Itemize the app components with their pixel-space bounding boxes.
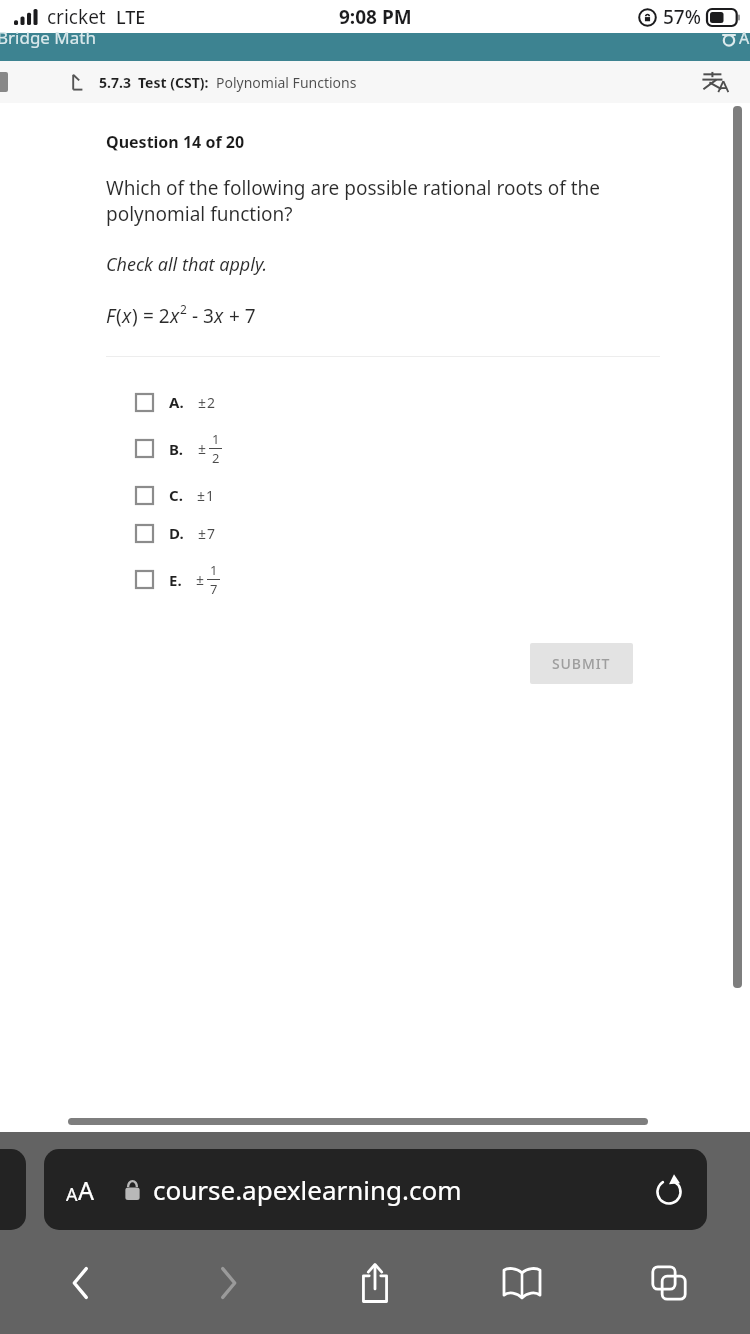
staticText: 7	[210, 580, 218, 598]
staticText: cricket	[47, 4, 106, 30]
staticText: - 3	[187, 303, 214, 329]
staticText: 57%	[663, 4, 701, 30]
staticText: D.	[169, 523, 184, 543]
staticText: (	[116, 303, 122, 329]
staticText: Question 14 of 20	[106, 131, 245, 153]
button[interactable]: SUBMIT	[530, 643, 633, 684]
staticText: 2	[207, 393, 216, 412]
button[interactable]: Share	[320, 1252, 430, 1314]
staticText: x	[214, 303, 224, 329]
staticText: x	[122, 303, 132, 329]
button[interactable]: E.	[0, 552, 750, 607]
staticText: 1	[210, 561, 218, 579]
button[interactable]: D.	[0, 514, 750, 552]
button[interactable]: Tabs	[614, 1252, 724, 1314]
staticText: 7	[207, 524, 216, 543]
staticText: Which of the following are possible rati…	[106, 175, 660, 227]
staticText: F	[106, 303, 116, 329]
staticText: A	[78, 1173, 94, 1207]
button[interactable]: Translate	[702, 70, 728, 94]
staticText: course.apexlearning.com	[153, 1172, 462, 1207]
button[interactable]: Forward	[173, 1252, 283, 1314]
staticText: 5.7.3	[99, 73, 131, 92]
staticText: E.	[169, 570, 182, 590]
button[interactable]: A	[44, 1149, 707, 1230]
staticText: A.	[169, 392, 184, 412]
staticText: SUBMIT	[552, 654, 611, 673]
staticText: ±	[196, 570, 205, 589]
staticText: ±	[198, 393, 207, 412]
staticText: )	[132, 303, 138, 329]
staticText: 9:08 PM	[339, 4, 412, 30]
button[interactable]: C.	[0, 476, 750, 514]
staticText: LTE	[116, 5, 146, 30]
staticText: Polynomial Functions	[216, 73, 357, 92]
button[interactable]: Reload	[653, 1174, 685, 1206]
staticText: Check all that apply.	[106, 252, 268, 277]
staticText: A	[739, 27, 750, 49]
staticText: = 2	[138, 303, 170, 329]
staticText: 2	[212, 449, 220, 467]
staticText: 2	[180, 301, 187, 317]
staticText: Test (CST):	[138, 73, 209, 92]
staticText: ±	[197, 486, 206, 505]
staticText: Bridge Math	[0, 26, 96, 49]
staticText: + 7	[224, 303, 256, 329]
staticText: 1	[206, 486, 215, 505]
staticText: B.	[169, 439, 184, 459]
button[interactable]: Bookmarks	[467, 1252, 577, 1314]
button[interactable]: Back to course	[64, 72, 84, 92]
staticText: x	[170, 303, 180, 329]
staticText: A	[66, 1182, 78, 1207]
staticText: 1	[212, 430, 220, 448]
button[interactable]: B.	[0, 421, 750, 476]
staticText: ±	[198, 524, 207, 543]
button[interactable]: A.	[0, 383, 750, 421]
button[interactable]: Back	[26, 1252, 136, 1314]
staticText: C.	[169, 485, 183, 505]
staticText: ±	[198, 439, 207, 458]
